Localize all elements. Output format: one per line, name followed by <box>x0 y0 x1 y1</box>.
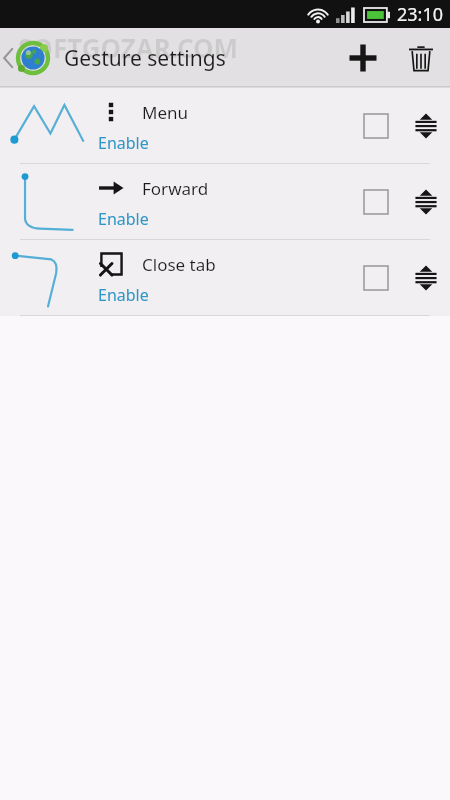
button[interactable]: Enable <box>96 283 155 307</box>
button[interactable]: Reorder Menu <box>402 88 450 163</box>
button[interactable]: Enable <box>96 131 155 155</box>
staticText: Menu <box>142 101 189 124</box>
button[interactable]: Enable <box>96 207 155 231</box>
button[interactable]: Add gesture <box>334 28 392 88</box>
button[interactable]: Menu <box>0 88 450 163</box>
button[interactable]: Close tab <box>0 240 450 315</box>
button[interactable]: Reorder Close tab <box>402 240 450 315</box>
button[interactable]: Navigate up <box>0 28 54 88</box>
staticText: Enable <box>98 132 149 154</box>
button[interactable]: Select Menu <box>350 88 402 163</box>
button[interactable]: Delete <box>392 28 450 88</box>
staticText: Forward <box>142 177 209 200</box>
staticText: 23:10 <box>397 2 444 27</box>
button[interactable]: Reorder Forward <box>402 164 450 239</box>
staticText: Gesture settings <box>64 44 226 73</box>
staticText: Close tab <box>142 253 216 276</box>
staticText: Enable <box>98 208 149 230</box>
staticText: Enable <box>98 284 149 306</box>
button[interactable]: Select Forward <box>350 164 402 239</box>
button[interactable]: Forward <box>0 164 450 239</box>
staticText: SOFTGOZAR.COM <box>18 30 239 65</box>
button[interactable]: Select Close tab <box>350 240 402 315</box>
